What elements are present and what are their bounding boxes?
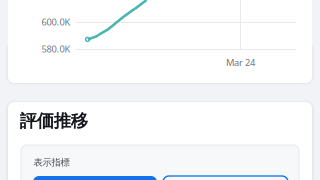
staticText: 評価推移 (20, 110, 88, 132)
staticText: 580.0K (41, 43, 70, 55)
button[interactable]: フォロワー数 (33, 176, 157, 180)
staticText: Mar 24 (226, 56, 255, 69)
button[interactable]: 評価数 (163, 176, 288, 180)
staticText: 600.0K (41, 16, 70, 28)
staticText: 表示指標 (33, 157, 69, 168)
